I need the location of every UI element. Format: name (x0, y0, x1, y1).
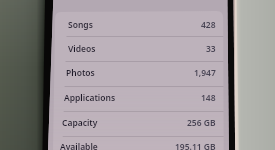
staticText: Songs (68, 19, 93, 31)
button[interactable] (52, 110, 224, 135)
button[interactable] (52, 134, 224, 150)
staticText: 1,947 (194, 67, 216, 79)
staticText: 195.11 GB (175, 141, 216, 150)
staticText: 428 (201, 19, 216, 31)
staticText: 256 GB (187, 117, 216, 129)
staticText: Videos (68, 43, 96, 55)
staticText: 33 (206, 43, 216, 55)
button[interactable] (52, 85, 224, 110)
staticText: Available (60, 141, 98, 150)
staticText: 148 (201, 92, 216, 104)
staticText: Applications (64, 92, 116, 104)
button[interactable] (52, 36, 224, 61)
button[interactable] (52, 60, 224, 85)
staticText: Capacity (62, 117, 98, 129)
button[interactable] (52, 12, 224, 37)
staticText: Photos (66, 67, 95, 79)
